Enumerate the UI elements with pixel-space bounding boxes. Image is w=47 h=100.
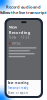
staticText: Today · 10:24 [9, 36, 30, 39]
staticText: Record audio and [6, 4, 41, 10]
staticText: Save recording [8, 81, 29, 85]
staticText: Transcript ready [8, 86, 28, 90]
staticText: 00:42 [12, 42, 21, 45]
staticText: follow the live transcript [0, 10, 47, 15]
staticText: Share or export [8, 91, 28, 95]
staticText: New Recording [9, 24, 31, 35]
